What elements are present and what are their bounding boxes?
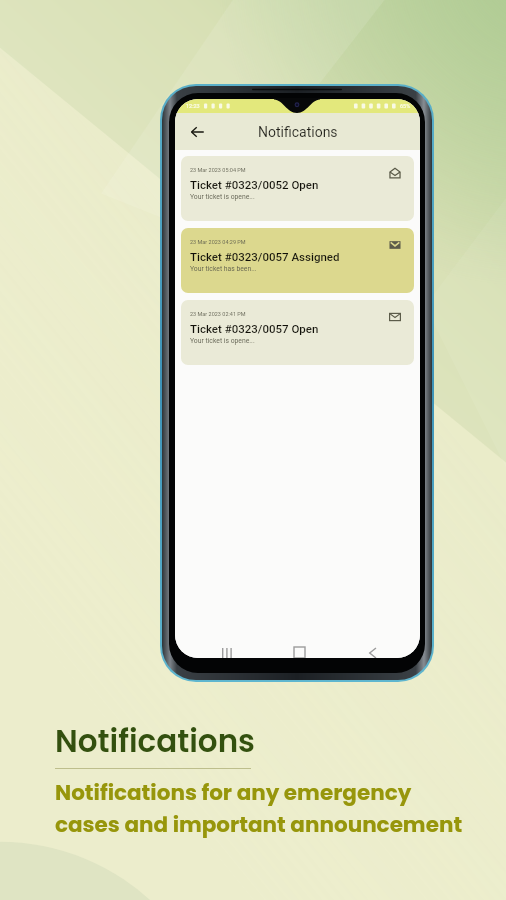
staticText: 23 Mar 2023 04:29 PM <box>190 239 246 245</box>
button[interactable]: 23 Mar 2023 04:29 PM <box>181 228 414 293</box>
staticText: Your ticket has been... <box>190 265 257 273</box>
button[interactable]: 23 Mar 2023 05:04 PM <box>181 156 414 221</box>
staticText: Ticket #0323/0057 Open <box>190 322 319 335</box>
staticText: 23 Mar 2023 05:04 PM <box>190 167 246 173</box>
staticText: Ticket #0323/0057 Assigned <box>190 250 340 263</box>
button[interactable]: Back <box>187 122 207 142</box>
staticText: Your ticket is opene... <box>190 193 255 201</box>
staticText: Your ticket is opene... <box>190 337 255 345</box>
staticText: 65% <box>400 103 411 109</box>
button[interactable]: Recents <box>216 642 238 658</box>
staticText: Notifications for any emergency cases an… <box>55 777 463 839</box>
staticText: 12:23 <box>186 103 200 109</box>
button[interactable]: Back <box>361 642 383 658</box>
staticText: Notifications <box>258 124 338 140</box>
button[interactable]: 23 Mar 2023 02:41 PM <box>181 300 414 365</box>
button[interactable]: Home <box>288 642 310 658</box>
staticText: 23 Mar 2023 02:41 PM <box>190 311 246 317</box>
staticText: Notifications <box>55 719 256 762</box>
staticText: Ticket #0323/0052 Open <box>190 178 319 191</box>
